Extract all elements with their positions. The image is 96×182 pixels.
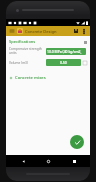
- button[interactable]: More options: [80, 27, 88, 35]
- button[interactable]: Volume (m3): [9, 59, 87, 66]
- button[interactable]: Recent apps: [65, 155, 83, 167]
- staticText: Volume (m3): [9, 61, 45, 65]
- staticText: Specifications: [9, 39, 83, 44]
- button[interactable]: Confirm: [70, 135, 84, 149]
- staticText: Concrete Design: [25, 29, 72, 34]
- button[interactable]: Open navigation menu: [8, 27, 16, 35]
- staticText: 10.0 MPa (40 kg/cm2, 4...: [47, 49, 85, 54]
- button[interactable]: Home: [39, 155, 57, 167]
- button[interactable]: Edit volume: [82, 60, 87, 65]
- button[interactable]: Back: [14, 155, 32, 167]
- button[interactable]: Save: [72, 27, 80, 35]
- staticText: Concrete mixes: [15, 75, 46, 81]
- button[interactable]: Concrete mixes: [9, 74, 46, 82]
- button[interactable]: Section options: [83, 40, 87, 44]
- staticText: 0.50: [60, 60, 67, 65]
- button[interactable]: Compressive strength units: [9, 47, 87, 55]
- staticText: Compressive strength units: [9, 47, 45, 55]
